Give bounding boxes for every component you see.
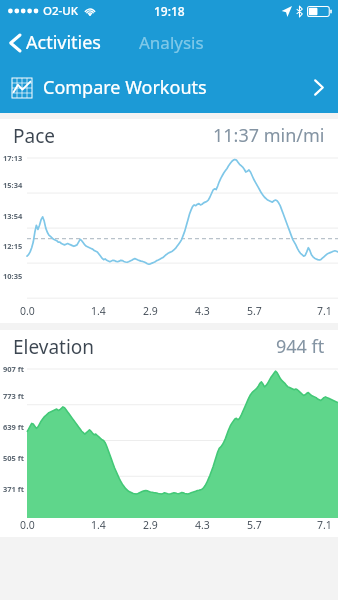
staticText: 15:34	[3, 180, 23, 190]
staticText: 1.4	[91, 518, 106, 532]
staticText: 19:18	[154, 3, 185, 19]
staticText: 505 ft	[3, 453, 24, 463]
button[interactable]: Activities	[0, 26, 111, 59]
staticText: 639 ft	[3, 422, 24, 432]
staticText: 4.3	[195, 518, 210, 532]
staticText: 5.7	[247, 304, 262, 318]
staticText: 1.4	[91, 304, 106, 318]
staticText: 0.0	[20, 304, 35, 318]
staticText: 7.1	[317, 518, 332, 532]
staticText: 5.7	[247, 518, 262, 532]
staticText: 907 ft	[3, 364, 24, 374]
staticText: 4.3	[195, 304, 210, 318]
staticText: O2-UK	[43, 3, 79, 19]
staticText: 7.1	[317, 304, 332, 318]
staticText: 12:15	[3, 241, 23, 251]
staticText: 773 ft	[3, 391, 24, 401]
staticText: 944 ft	[276, 334, 325, 359]
staticText: Analysis	[139, 31, 204, 54]
staticText: 2.9	[143, 518, 158, 532]
staticText: 10:35	[3, 271, 23, 281]
staticText: 2.9	[143, 304, 158, 318]
staticText: Activities	[26, 30, 101, 55]
staticText: 371 ft	[3, 484, 24, 494]
staticText: 17:13	[3, 153, 23, 163]
staticText: 0.0	[20, 518, 35, 532]
button[interactable]: Compare Workouts	[0, 62, 338, 113]
staticText: Pace	[13, 123, 55, 149]
staticText: 11:37 min/mi	[213, 123, 325, 148]
staticText: Elevation	[13, 334, 95, 360]
staticText: Compare Workouts	[43, 75, 207, 100]
staticText: 13:54	[3, 211, 23, 221]
